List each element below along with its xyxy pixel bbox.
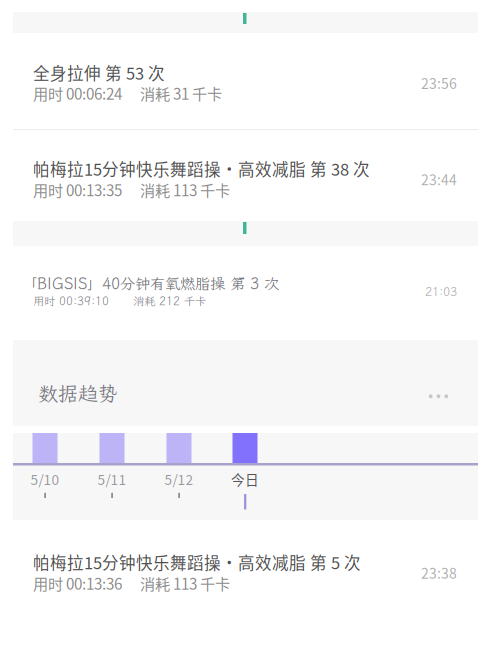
staticText: 帕梅拉15分钟快乐舞蹈操·高效减脂 第 5 次 <box>33 550 361 574</box>
staticText: 全身拉伸 第 53 次 <box>33 60 165 84</box>
staticText: 今日 <box>231 469 259 489</box>
staticText: 帕梅拉15分钟快乐舞蹈操·高效减脂 第 38 次 <box>33 156 370 180</box>
staticText: 5/11 <box>97 469 126 489</box>
staticText: 23:56 <box>421 73 457 93</box>
button[interactable]: More options <box>414 374 462 418</box>
staticText: 「BIGSIS」40分钟有氧燃脂操 第 3 次 <box>22 273 279 294</box>
staticText: 21:03 <box>425 283 457 299</box>
staticText: 用时 00:39:10 消耗 212 千卡 <box>33 293 206 309</box>
staticText: 5/10 <box>30 469 59 489</box>
button[interactable]: 帕梅拉15分钟快乐舞蹈操·高效减脂 第 38 次 <box>0 130 492 221</box>
button[interactable]: 全身拉伸 第 53 次 <box>0 33 492 129</box>
button[interactable]: 「BIGSIS」40分钟有氧燃脂操 第 3 次 <box>0 246 492 340</box>
staticText: 用时 00:13:36 消耗 113 千卡 <box>33 572 230 594</box>
staticText: 用时 00:13:35 消耗 113 千卡 <box>33 178 230 200</box>
staticText: 5/12 <box>164 469 193 489</box>
button[interactable]: 帕梅拉15分钟快乐舞蹈操·高效减脂 第 5 次 <box>0 520 492 616</box>
staticText: 23:38 <box>421 562 457 583</box>
staticText: 用时 00:06:24 消耗 31 千卡 <box>33 82 222 104</box>
staticText: 数据趋势 <box>38 380 118 406</box>
staticText: 23:44 <box>421 169 457 189</box>
